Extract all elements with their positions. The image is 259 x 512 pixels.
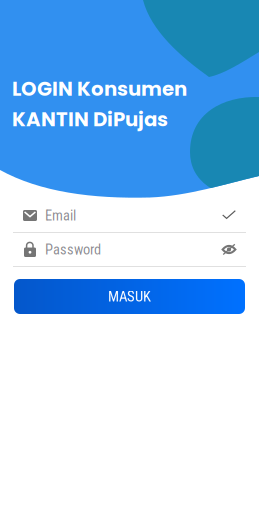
staticText: MASUK: [108, 288, 151, 305]
button[interactable]: Password: [0, 233, 259, 267]
staticText: Password: [45, 241, 101, 258]
staticText: KANTIN DiPujas: [12, 106, 168, 133]
button[interactable]: MASUK: [0, 279, 259, 314]
staticText: LOGIN Konsumen: [12, 75, 187, 103]
staticText: Email: [45, 207, 76, 224]
button[interactable]: Email: [0, 199, 259, 233]
